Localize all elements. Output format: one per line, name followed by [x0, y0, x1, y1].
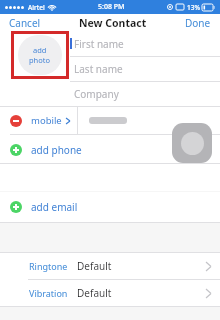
- staticText: add phone: [31, 143, 82, 157]
- button[interactable]: Vibration: [0, 280, 220, 306]
- button[interactable]: Done: [183, 14, 213, 31]
- staticText: 13%: [187, 3, 200, 12]
- staticText: Vibration: [29, 287, 68, 299]
- button[interactable]: add email: [0, 192, 220, 221]
- staticText: Airtel: [28, 3, 45, 12]
- staticText: First name: [74, 37, 124, 51]
- staticText: Company: [74, 87, 119, 101]
- staticText: mobile: [31, 114, 62, 127]
- button[interactable]: Remove phone: [0, 107, 220, 134]
- staticText: photo: [29, 55, 51, 65]
- staticText: Cancel: [9, 16, 41, 29]
- staticText: Default: [77, 286, 112, 300]
- button[interactable]: Add photo: [11, 31, 69, 79]
- button[interactable]: Cancel: [7, 14, 43, 31]
- staticText: Done: [185, 16, 211, 29]
- button[interactable]: Ringtone: [0, 253, 220, 279]
- button[interactable]: Last name: [70, 56, 220, 81]
- staticText: add email: [31, 200, 78, 214]
- other: Remove phone: [10, 115, 22, 127]
- staticText: add: [33, 45, 47, 55]
- staticText: New Contact: [79, 16, 147, 30]
- staticText: Ringtone: [29, 260, 68, 272]
- button[interactable]: add phone: [0, 135, 220, 164]
- button[interactable]: Company: [70, 81, 220, 106]
- button[interactable]: First name: [70, 31, 220, 56]
- staticText: 5:08 PM: [98, 2, 125, 12]
- staticText: Last name: [74, 62, 123, 76]
- staticText: Default: [77, 259, 112, 273]
